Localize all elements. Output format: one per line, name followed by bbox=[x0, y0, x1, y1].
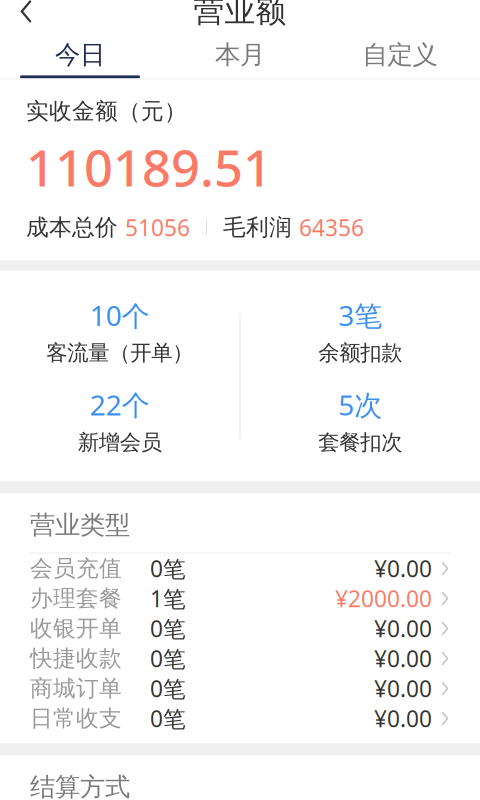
button[interactable]: 5次 bbox=[240, 376, 480, 465]
staticText: 今日 bbox=[55, 39, 105, 70]
staticText: 22个 bbox=[90, 386, 150, 423]
button[interactable]: Back bbox=[0, 0, 52, 34]
staticText: 快捷收款 bbox=[30, 645, 122, 672]
button[interactable]: 会员充值 bbox=[0, 553, 480, 583]
staticText: 成本总价 bbox=[26, 214, 125, 241]
staticText: 0笔 bbox=[150, 643, 186, 673]
staticText: 自定义 bbox=[362, 39, 437, 70]
staticText: 1笔 bbox=[150, 583, 186, 613]
staticText: 10个 bbox=[90, 297, 150, 334]
staticText: 0笔 bbox=[150, 553, 186, 583]
button[interactable]: 今日 bbox=[0, 34, 160, 78]
button[interactable]: 3笔 bbox=[240, 287, 480, 376]
button[interactable]: 商城订单 bbox=[0, 673, 480, 703]
staticText: 64356 bbox=[299, 212, 364, 243]
staticText: 余额扣款 bbox=[318, 340, 402, 366]
staticText: 套餐扣次 bbox=[318, 429, 402, 455]
staticText: 办理套餐 bbox=[30, 585, 122, 612]
button[interactable]: 本月 bbox=[160, 34, 320, 78]
staticText: 0笔 bbox=[150, 703, 186, 733]
staticText: 0笔 bbox=[150, 613, 186, 643]
staticText: 会员充值 bbox=[30, 555, 122, 582]
staticText: 实收金额（元） bbox=[26, 97, 187, 125]
staticText: 日常收支 bbox=[30, 705, 122, 732]
button[interactable]: 办理套餐 bbox=[0, 583, 480, 613]
button[interactable]: 快捷收款 bbox=[0, 643, 480, 673]
staticText: ¥0.00 bbox=[374, 643, 432, 673]
staticText: 收银开单 bbox=[30, 615, 122, 642]
staticText: ¥2000.00 bbox=[335, 583, 432, 613]
staticText: 本月 bbox=[215, 39, 265, 70]
staticText: ¥0.00 bbox=[374, 553, 432, 583]
staticText: 新增会员 bbox=[78, 429, 162, 455]
staticText: 110189.51 bbox=[26, 133, 272, 200]
staticText: 0笔 bbox=[150, 673, 186, 703]
staticText: ¥0.00 bbox=[374, 673, 432, 703]
staticText: 客流量（开单） bbox=[46, 340, 193, 366]
button[interactable]: 收银开单 bbox=[0, 613, 480, 643]
staticText: 营业类型 bbox=[30, 509, 130, 540]
staticText: 结算方式 bbox=[30, 771, 130, 800]
staticText: 商城订单 bbox=[30, 675, 122, 702]
staticText: ¥0.00 bbox=[374, 613, 432, 643]
button[interactable]: 22个 bbox=[0, 376, 239, 465]
staticText: 毛利润 bbox=[223, 214, 299, 241]
button[interactable]: 日常收支 bbox=[0, 703, 480, 733]
staticText: ¥0.00 bbox=[374, 703, 432, 733]
staticText: 3笔 bbox=[338, 297, 382, 334]
button[interactable]: 10个 bbox=[0, 287, 239, 376]
staticText: 营业额 bbox=[193, 0, 286, 30]
button[interactable]: 自定义 bbox=[320, 34, 480, 78]
staticText: 5次 bbox=[338, 386, 382, 423]
staticText: 51056 bbox=[125, 212, 190, 243]
